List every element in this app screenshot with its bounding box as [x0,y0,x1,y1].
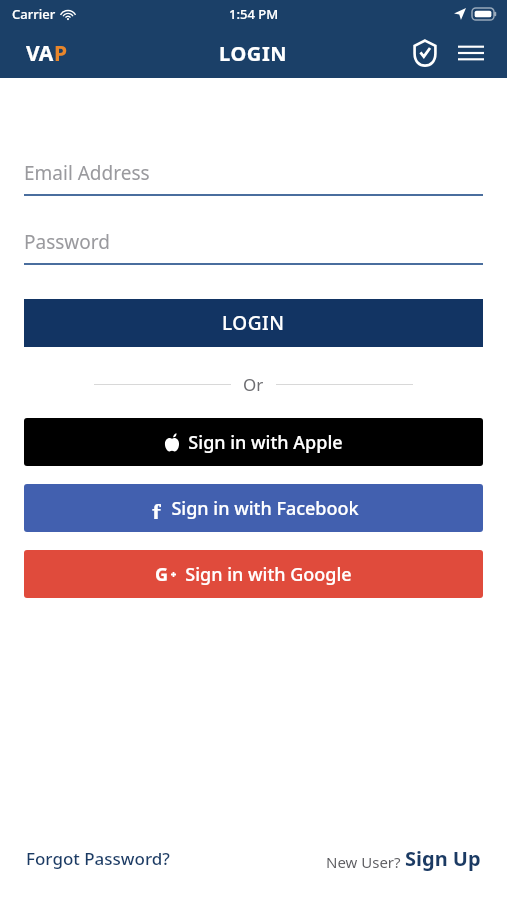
staticText: Forgot Password? [26,847,170,870]
staticText: Password [24,229,110,255]
button[interactable]: Sign in with Apple [24,418,483,466]
staticText: P [54,39,68,68]
staticText: LOGIN [222,310,285,336]
staticText: LOGIN [219,40,288,67]
staticText: Sign in with Apple [188,430,343,455]
staticText: Sign in with Facebook [171,496,359,521]
staticText: f [152,499,161,519]
staticText: Sign in with Google [185,562,352,587]
staticText: G [155,562,169,587]
staticText: Sign Up [405,845,481,872]
button[interactable]: Security [405,33,445,73]
button[interactable]: Password [24,229,483,265]
button[interactable]: G [24,550,483,598]
button[interactable]: LOGIN [24,299,483,347]
staticText: VA [26,39,54,68]
staticText: New User? [326,852,405,872]
button[interactable]: Forgot Password? [26,847,170,870]
button[interactable]: New User? [326,845,481,872]
button[interactable]: Email Address [24,160,483,196]
staticText: Carrier [12,5,56,23]
staticText: Or [243,373,264,396]
button[interactable]: f [24,484,483,532]
button[interactable]: VA [26,39,68,68]
staticText: Email Address [24,160,150,186]
button[interactable]: Menu [451,33,491,73]
staticText: 1:54 PM [229,5,279,23]
